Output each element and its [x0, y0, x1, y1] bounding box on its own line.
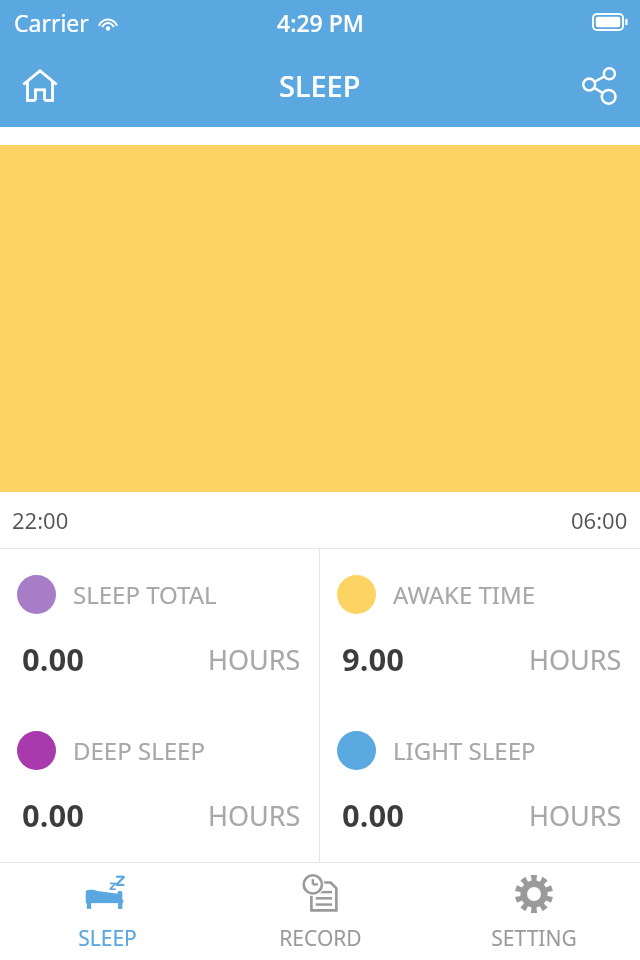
button[interactable]: AWAKE TIME	[320, 549, 640, 705]
staticText: 0.00	[22, 638, 84, 680]
staticText: HOURS	[529, 797, 622, 834]
staticText: 22:00	[12, 505, 69, 535]
button[interactable]: SLEEP TOTAL	[0, 549, 319, 705]
staticText: 0.00	[342, 794, 404, 836]
staticText: SLEEP TOTAL	[73, 578, 217, 611]
staticText: SLEEP	[78, 924, 137, 953]
button[interactable]: DEEP SLEEP	[0, 705, 319, 862]
staticText: Carrier	[14, 7, 89, 38]
staticText: 4:29 PM	[277, 7, 364, 38]
button[interactable]: SETTING	[427, 863, 640, 960]
staticText: 0.00	[22, 794, 84, 836]
staticText: HOURS	[208, 797, 301, 834]
button[interactable]: LIGHT SLEEP	[320, 705, 640, 862]
staticText: SETTING	[491, 924, 577, 953]
button[interactable]: SLEEP	[0, 863, 214, 960]
button[interactable]: Home	[12, 58, 68, 114]
staticText: HOURS	[208, 641, 301, 678]
staticText: RECORD	[279, 924, 362, 953]
staticText: 9.00	[342, 638, 404, 680]
staticText: DEEP SLEEP	[73, 734, 205, 767]
staticText: SLEEP	[279, 66, 361, 105]
staticText: HOURS	[529, 641, 622, 678]
button[interactable]: RECORD	[214, 863, 427, 960]
button[interactable]: Share	[572, 58, 628, 114]
staticText: LIGHT SLEEP	[393, 734, 536, 767]
staticText: 06:00	[571, 505, 628, 535]
staticText: AWAKE TIME	[393, 578, 536, 611]
